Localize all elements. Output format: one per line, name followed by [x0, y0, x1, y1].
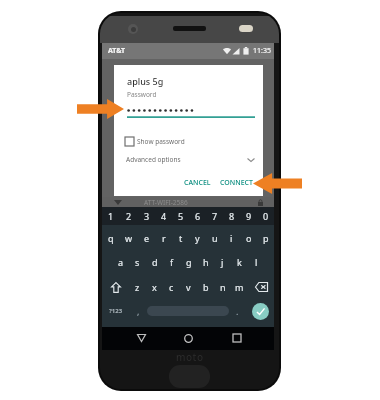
button[interactable]: x: [146, 275, 163, 299]
staticText: h: [203, 256, 209, 268]
button[interactable]: l: [248, 251, 265, 273]
staticText: a: [118, 256, 124, 268]
staticText: c: [169, 281, 174, 293]
staticText: 0: [263, 210, 269, 222]
staticText: g: [186, 256, 192, 268]
staticText: moto: [176, 350, 204, 364]
staticText: l: [255, 256, 258, 268]
staticText: o: [246, 232, 252, 244]
button[interactable]: 2: [120, 205, 138, 227]
button[interactable]: a: [112, 251, 129, 273]
button[interactable]: g: [180, 251, 197, 273]
staticText: ,: [137, 305, 140, 317]
staticText: Advanced options: [126, 155, 181, 164]
staticText: s: [135, 256, 140, 268]
button[interactable]: d: [146, 251, 163, 273]
button[interactable]: Home: [181, 331, 195, 345]
button[interactable]: c: [163, 275, 180, 299]
button[interactable]: 3: [138, 205, 155, 227]
staticText: x: [152, 281, 157, 293]
button[interactable]: p: [257, 227, 274, 249]
button[interactable]: 7: [206, 205, 223, 227]
staticText: e: [144, 232, 150, 244]
button[interactable]: s: [129, 251, 146, 273]
staticText: ?123: [109, 307, 123, 315]
button[interactable]: CANCEL: [179, 175, 216, 191]
button[interactable]: Enter: [246, 299, 274, 323]
button[interactable]: j: [214, 251, 231, 273]
staticText: .: [236, 305, 239, 317]
staticText: t: [179, 232, 183, 244]
staticText: CONNECT: [220, 178, 253, 188]
button[interactable]: Recents: [230, 331, 244, 345]
button[interactable]: 5: [172, 205, 189, 227]
staticText: 5: [178, 210, 184, 222]
button[interactable]: z: [129, 275, 146, 299]
button[interactable]: q: [102, 227, 120, 249]
button[interactable]: n: [214, 275, 231, 299]
button[interactable]: h: [197, 251, 214, 273]
button[interactable]: f: [163, 251, 180, 273]
staticText: 9: [246, 210, 252, 222]
staticText: ATT-WIFI-2586: [144, 198, 188, 207]
staticText: n: [220, 281, 226, 293]
staticText: Password: [127, 90, 157, 99]
staticText: d: [152, 256, 158, 268]
button[interactable]: 0: [257, 205, 274, 227]
button[interactable]: v: [180, 275, 197, 299]
button[interactable]: 8: [223, 205, 240, 227]
staticText: f: [170, 256, 174, 268]
button[interactable]: 4: [155, 205, 172, 227]
button[interactable]: i: [223, 227, 240, 249]
staticText: p: [263, 232, 269, 244]
button[interactable]: 6: [189, 205, 206, 227]
staticText: 6: [195, 210, 201, 222]
button[interactable]: 1: [102, 205, 120, 227]
button[interactable]: Shift: [102, 275, 129, 299]
staticText: 7: [212, 210, 218, 222]
staticText: y: [195, 232, 200, 244]
button[interactable]: y: [189, 227, 206, 249]
staticText: b: [203, 281, 209, 293]
button[interactable]: Advanced options: [126, 153, 263, 166]
button[interactable]: ,: [130, 299, 147, 323]
button[interactable]: t: [172, 227, 189, 249]
staticText: k: [237, 256, 242, 268]
staticText: 11:35: [253, 46, 271, 56]
staticText: 3: [144, 210, 150, 222]
staticText: 8: [229, 210, 235, 222]
staticText: i: [230, 232, 233, 244]
staticText: j: [221, 256, 224, 268]
button[interactable]: r: [155, 227, 172, 249]
staticText: m: [235, 281, 244, 293]
button[interactable]: m: [231, 275, 248, 299]
button[interactable]: e: [138, 227, 155, 249]
staticText: 1: [108, 210, 114, 222]
button[interactable]: Backspace: [248, 275, 274, 299]
staticText: v: [186, 281, 191, 293]
staticText: r: [162, 232, 166, 244]
button[interactable]: Show password: [125, 134, 215, 148]
button[interactable]: b: [197, 275, 214, 299]
button[interactable]: u: [206, 227, 223, 249]
staticText: q: [108, 232, 114, 244]
staticText: CANCEL: [184, 178, 211, 188]
button[interactable]: Back: [134, 331, 148, 345]
staticText: 2: [126, 210, 132, 222]
staticText: z: [135, 281, 140, 293]
button[interactable]: o: [240, 227, 257, 249]
staticText: aplus 5g: [127, 75, 164, 87]
button[interactable]: .: [229, 299, 246, 323]
button[interactable]: CONNECT: [216, 175, 256, 191]
button[interactable]: 9: [240, 205, 257, 227]
staticText: u: [212, 232, 218, 244]
button[interactable]: Space: [147, 299, 229, 323]
button[interactable]: ?123: [102, 299, 130, 323]
button[interactable]: k: [231, 251, 248, 273]
staticText: w: [125, 232, 133, 244]
staticText: 4: [161, 210, 167, 222]
staticText: AT&T: [108, 46, 126, 56]
staticText: Show password: [137, 137, 185, 146]
button[interactable]: w: [120, 227, 138, 249]
